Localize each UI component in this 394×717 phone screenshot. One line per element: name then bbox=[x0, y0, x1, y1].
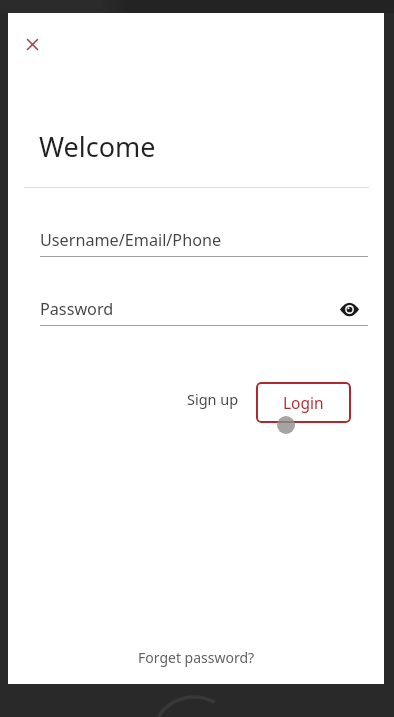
button[interactable] bbox=[20, 32, 44, 56]
staticText: Forget password? bbox=[138, 648, 255, 667]
staticText: Username/Email/Phone bbox=[40, 229, 222, 251]
staticText: Welcome bbox=[39, 128, 156, 165]
button[interactable] bbox=[337, 300, 361, 318]
staticText: Password bbox=[40, 298, 114, 320]
staticText: Sign up bbox=[187, 389, 239, 409]
button[interactable]: Forget password? bbox=[121, 646, 271, 669]
button[interactable]: Username/Email/Phone bbox=[40, 219, 368, 257]
button[interactable]: Sign up bbox=[178, 386, 248, 412]
button[interactable]: Login bbox=[256, 382, 351, 423]
staticText: Login bbox=[283, 392, 324, 413]
button[interactable]: Password bbox=[40, 288, 368, 326]
